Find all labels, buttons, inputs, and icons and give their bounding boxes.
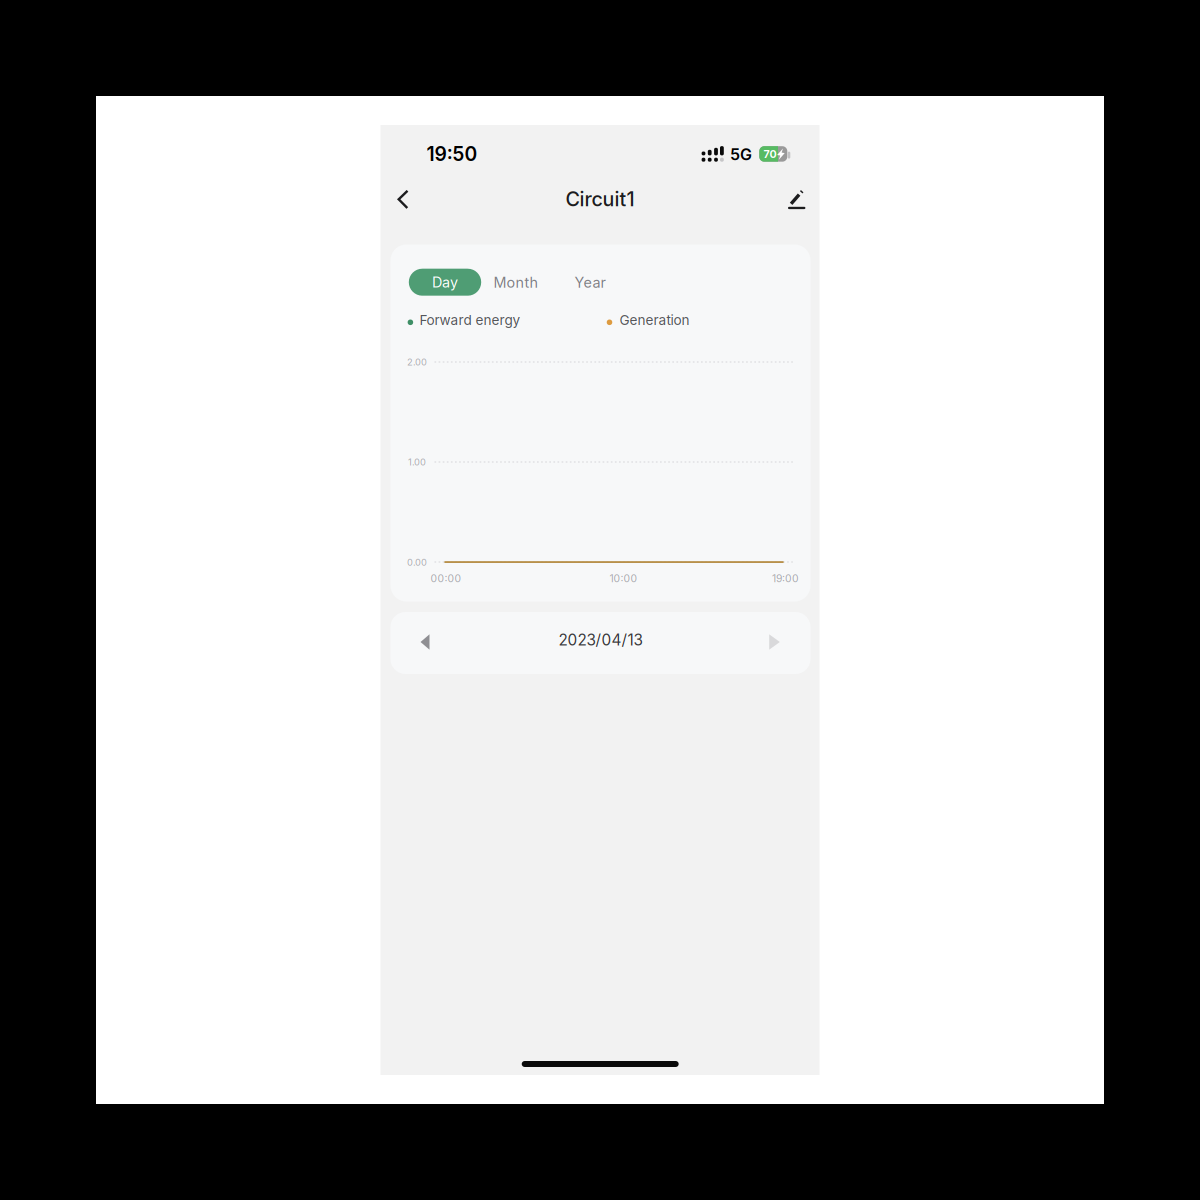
button[interactable]: Year	[574, 274, 605, 291]
staticText: 19:00	[772, 572, 799, 585]
button[interactable]: Month	[493, 274, 538, 291]
button[interactable]: Day	[409, 269, 481, 296]
staticText: Circuit1	[565, 187, 634, 211]
button[interactable]: Next day	[759, 627, 789, 657]
staticText: 0.00	[407, 557, 427, 568]
staticText: 10:00	[609, 572, 637, 585]
staticText: 2023/04/13	[558, 631, 642, 649]
staticText: 1.00	[408, 456, 426, 468]
staticText: Day	[432, 273, 458, 291]
staticText: Year	[574, 274, 605, 291]
staticText: 5G	[730, 145, 752, 164]
button[interactable]: Edit	[781, 184, 811, 214]
staticText: 2.00	[407, 356, 427, 368]
button[interactable]: Previous day	[410, 627, 440, 657]
staticText: 00:00	[430, 572, 461, 585]
staticText: Forward energy	[419, 312, 520, 328]
staticText: 19:50	[426, 142, 477, 166]
staticText: Generation	[619, 312, 689, 328]
button[interactable]: Back	[388, 184, 418, 214]
staticText: 70	[763, 147, 776, 160]
staticText: Month	[493, 274, 538, 291]
